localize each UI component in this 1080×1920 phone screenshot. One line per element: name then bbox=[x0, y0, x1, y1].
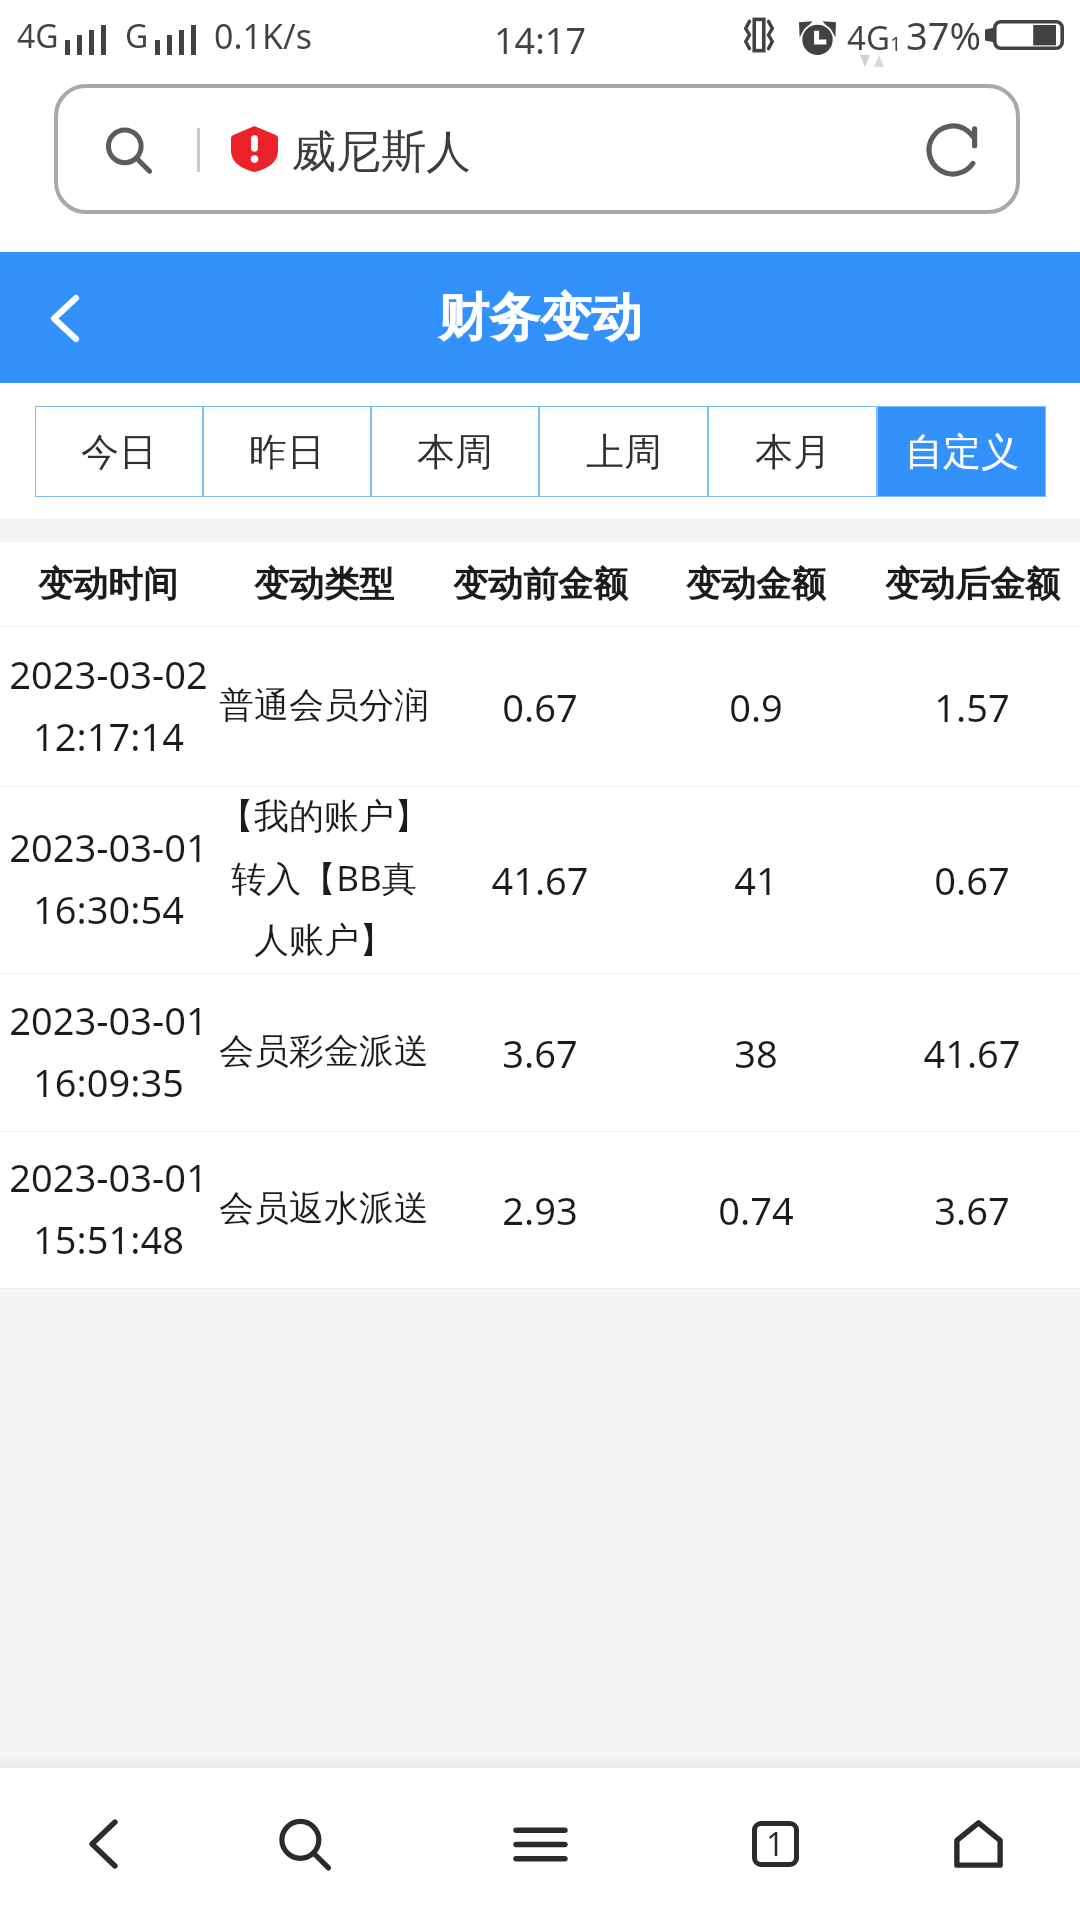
staticText: 【我的账户】 bbox=[219, 794, 429, 838]
staticText: 41.67 bbox=[491, 854, 589, 906]
button[interactable]: 2023-03-01 bbox=[0, 787, 1080, 973]
button[interactable]: 今日 bbox=[35, 406, 203, 497]
staticText: 1.57 bbox=[934, 681, 1010, 733]
button[interactable]: 昨日 bbox=[203, 406, 371, 497]
button[interactable]: 自定义 bbox=[877, 406, 1046, 497]
staticText: 16:30:54 bbox=[33, 883, 184, 935]
staticText: 14:17 bbox=[494, 16, 587, 65]
staticText: 昨日 bbox=[249, 428, 325, 476]
staticText: 15:51:48 bbox=[33, 1213, 184, 1265]
staticText: 16:09:35 bbox=[33, 1056, 184, 1108]
staticText: 变动后金额 bbox=[885, 562, 1060, 606]
staticText: 41 bbox=[734, 854, 778, 906]
staticText: 4G bbox=[17, 14, 59, 58]
staticText: 2023-03-01 bbox=[9, 1151, 208, 1203]
staticText: G bbox=[125, 14, 149, 58]
staticText: 会员彩金派送 bbox=[219, 1029, 429, 1073]
staticText: 财务变动 bbox=[438, 286, 642, 350]
button[interactable]: Back bbox=[28, 1768, 178, 1920]
button[interactable]: Back bbox=[10, 263, 120, 373]
staticText: 变动类型 bbox=[254, 562, 394, 606]
staticText: 1 bbox=[766, 1822, 785, 1866]
button[interactable]: Search bbox=[229, 1768, 379, 1920]
button[interactable]: 2023-03-02 bbox=[0, 627, 1080, 786]
button[interactable]: 本月 bbox=[708, 406, 877, 497]
staticText: 2.93 bbox=[502, 1184, 578, 1236]
staticText: 变动金额 bbox=[686, 562, 826, 606]
staticText: 12:17:14 bbox=[33, 710, 184, 762]
button[interactable]: 2023-03-01 bbox=[0, 1132, 1080, 1288]
staticText: 2023-03-01 bbox=[9, 821, 208, 873]
staticText: 2023-03-01 bbox=[9, 994, 208, 1046]
staticText: 1 bbox=[890, 30, 897, 57]
staticText: 变动时间 bbox=[38, 562, 178, 606]
button[interactable]: 本周 bbox=[371, 406, 539, 497]
button[interactable]: 上周 bbox=[539, 406, 708, 497]
staticText: 本周 bbox=[417, 428, 493, 476]
button[interactable] bbox=[54, 84, 1020, 214]
staticText: 会员返水派送 bbox=[219, 1186, 429, 1230]
staticText: 4G bbox=[847, 15, 890, 60]
staticText: 0.67 bbox=[502, 681, 578, 733]
button[interactable]: Refresh bbox=[915, 112, 991, 188]
staticText: 37% bbox=[906, 9, 982, 61]
staticText: 0.74 bbox=[718, 1184, 794, 1236]
staticText: 变动前金额 bbox=[453, 562, 628, 606]
staticText: 上周 bbox=[586, 428, 662, 476]
staticText: 38 bbox=[734, 1027, 778, 1079]
staticText: 自定义 bbox=[905, 428, 1019, 476]
staticText: 0.67 bbox=[934, 854, 1010, 906]
staticText: 本月 bbox=[755, 428, 831, 476]
staticText: 0.1K/s bbox=[214, 13, 312, 59]
staticText: 2023-03-02 bbox=[9, 648, 208, 700]
staticText: 3.67 bbox=[934, 1184, 1010, 1236]
button[interactable]: 2023-03-01 bbox=[0, 974, 1080, 1131]
staticText: 转入【BB真 bbox=[231, 854, 417, 902]
staticText: 人账户】 bbox=[254, 918, 394, 962]
staticText: 0.9 bbox=[729, 681, 783, 733]
staticText: 41.67 bbox=[923, 1027, 1021, 1079]
staticText: 今日 bbox=[81, 428, 157, 476]
staticText: 3.67 bbox=[502, 1027, 578, 1079]
staticText: 普通会员分润 bbox=[219, 683, 429, 727]
button[interactable]: Menu bbox=[465, 1768, 615, 1920]
button[interactable]: Tabs bbox=[700, 1768, 850, 1920]
button[interactable]: Home bbox=[903, 1768, 1053, 1920]
staticText: 威尼斯人 bbox=[291, 124, 471, 181]
